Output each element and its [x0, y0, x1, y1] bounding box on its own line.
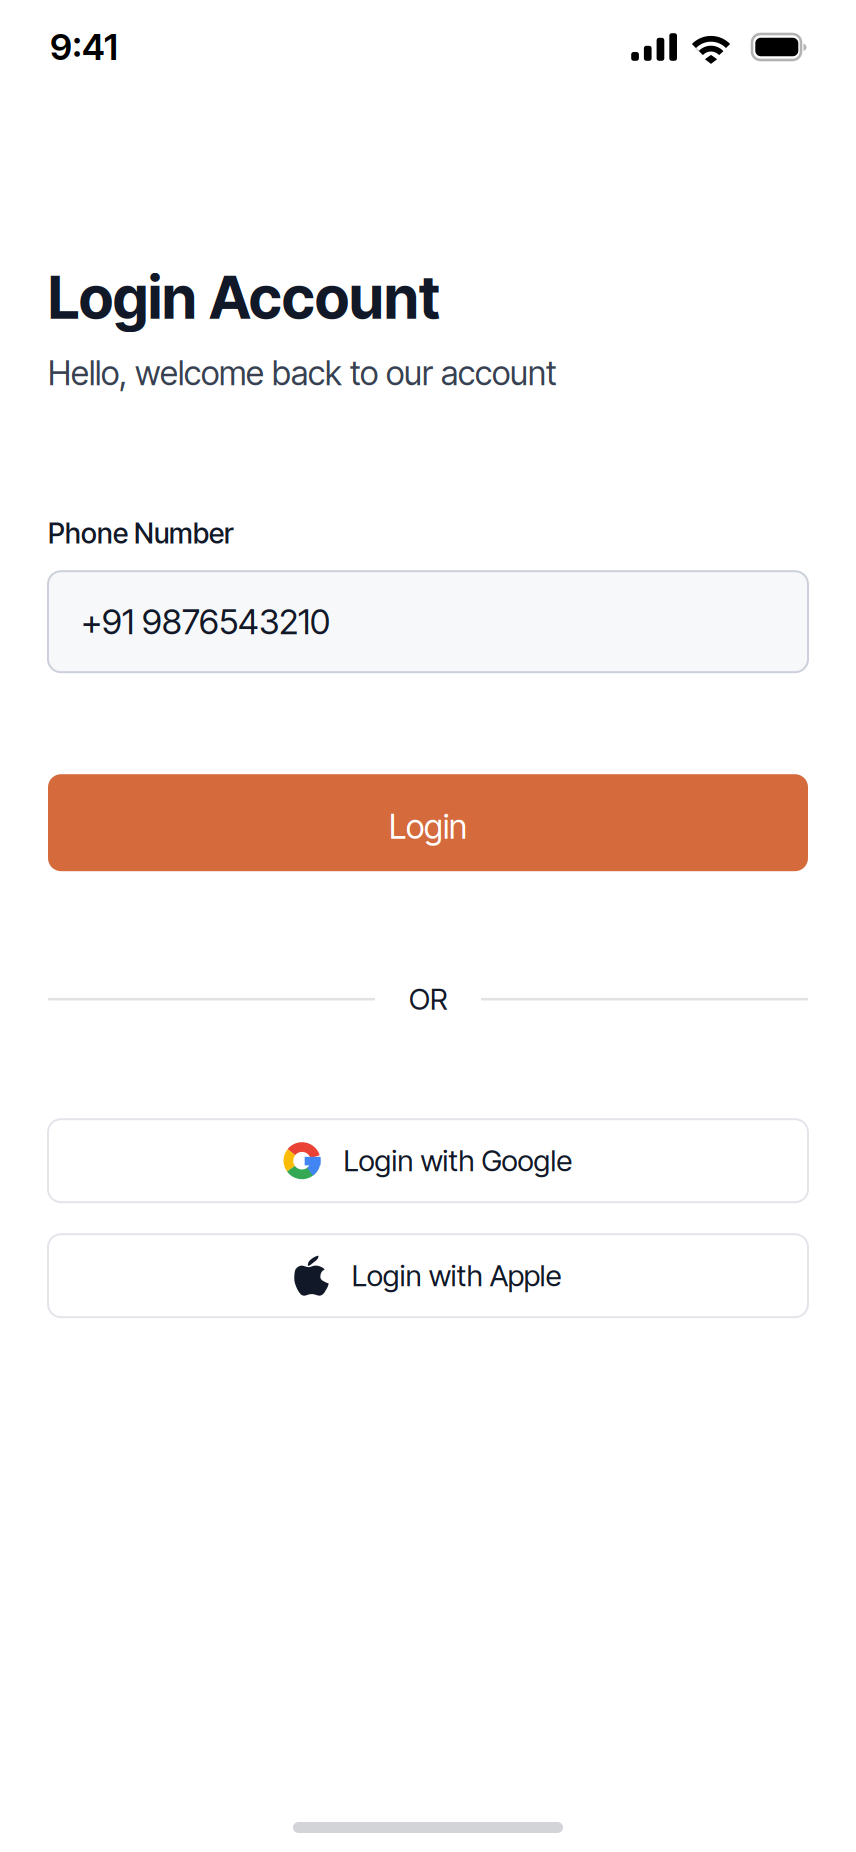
staticText: Login Account — [48, 262, 440, 333]
staticText: +91 9876543210 — [81, 601, 330, 643]
staticText: Login — [389, 806, 467, 847]
staticText: 9:41 — [50, 25, 118, 69]
button[interactable]: +91 9876543210 — [48, 571, 808, 672]
staticText: OR — [409, 981, 447, 1017]
button[interactable]: Login with Apple — [48, 1234, 808, 1317]
button[interactable]: Login — [48, 774, 808, 871]
staticText: Login with Apple — [352, 1258, 562, 1293]
staticText: Login with Google — [343, 1143, 572, 1178]
staticText: Hello, welcome back to our account — [48, 353, 557, 393]
staticText: Phone Number — [48, 516, 234, 550]
button[interactable]: Login with Google — [48, 1119, 808, 1202]
